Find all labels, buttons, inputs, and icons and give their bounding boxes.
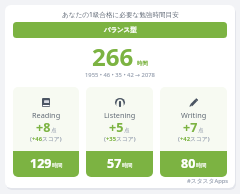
staticText: 129: [30, 155, 52, 172]
staticText: (: [178, 135, 180, 143]
staticText: +8: [36, 119, 51, 136]
staticText: (: [104, 135, 106, 143]
staticText: +7: [183, 119, 198, 136]
staticText: 時間: [137, 60, 148, 67]
staticText: スコア): [190, 135, 210, 143]
staticText: 57: [107, 155, 122, 172]
button[interactable]: Writing: [160, 87, 227, 177]
staticText: 点: [198, 127, 204, 134]
staticText: 点: [51, 127, 57, 134]
button[interactable]: バランス型: [13, 22, 227, 38]
staticText: #スタスタApps: [187, 177, 229, 185]
staticText: 時間: [122, 162, 133, 169]
staticText: 80: [181, 155, 196, 172]
other: Reading: [42, 98, 50, 107]
staticText: +5: [109, 119, 124, 136]
staticText: +35: [106, 135, 116, 143]
staticText: +42: [180, 135, 190, 143]
button[interactable]: Listening: [86, 87, 153, 177]
button[interactable]: Reading: [13, 87, 79, 177]
staticText: Listening: [104, 110, 136, 120]
staticText: 点: [124, 127, 130, 134]
staticText: バランス型: [104, 26, 137, 34]
staticText: 1955 • 46 • 35 • 42 → 2078: [85, 71, 155, 79]
staticText: +46: [32, 135, 42, 143]
staticText: 時間: [196, 162, 207, 169]
other: Writing: [189, 98, 198, 107]
staticText: スコア): [42, 135, 62, 143]
staticText: Writing: [181, 110, 207, 120]
staticText: あなたの1級合格に必要な勉強時間目安: [62, 10, 179, 19]
staticText: (: [30, 135, 32, 143]
staticText: スコア): [116, 135, 136, 143]
staticText: 時間: [52, 162, 63, 169]
other: Listening: [115, 98, 125, 107]
staticText: 266: [92, 40, 134, 73]
staticText: Reading: [32, 110, 61, 120]
